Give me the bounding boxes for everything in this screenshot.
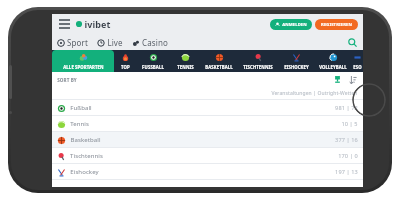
button[interactable]: Search (346, 36, 358, 48)
button[interactable]: TENNIS (170, 50, 200, 72)
staticText: Fußball (70, 104, 92, 112)
button[interactable]: Eishockey (52, 164, 363, 180)
staticText: ALLE SPORTARTEN (63, 64, 104, 70)
staticText: REGISTRIEREN (321, 22, 352, 28)
staticText: Tennis (70, 120, 89, 128)
button[interactable]: Fußball (52, 100, 363, 116)
button[interactable]: Menu (57, 17, 71, 31)
button[interactable]: Home button (352, 83, 386, 117)
staticText: Veranstaltungen | Outright-Wetten (271, 90, 358, 97)
button[interactable]: REGISTRIEREN (315, 19, 358, 30)
button[interactable]: Tennis (52, 116, 363, 132)
staticText: Tischtennis (70, 152, 103, 160)
button[interactable]: TISCHTENNIS (238, 50, 278, 72)
button[interactable]: ivibet (75, 18, 111, 30)
button[interactable]: FUSSBALL (136, 50, 170, 72)
staticText: 981 | 72 (335, 104, 358, 112)
staticText: SORT BY (57, 77, 77, 83)
staticText: 170 | 0 (338, 152, 358, 160)
button[interactable]: Sport (57, 37, 88, 48)
button[interactable]: Casino (132, 37, 168, 48)
staticText: ANMELDEN (282, 22, 307, 28)
button[interactable]: TOP (114, 50, 136, 72)
staticText: BASKETBALL (205, 64, 233, 70)
button[interactable]: Live (97, 37, 123, 48)
staticText: TOP (121, 64, 130, 70)
button[interactable]: VOLLEYBALL (314, 50, 352, 72)
button[interactable]: Tournaments (332, 74, 343, 85)
button[interactable]: EISHOCKEY (278, 50, 314, 72)
staticText: Casino (142, 37, 168, 48)
staticText: VOLLEYBALL (319, 64, 347, 70)
staticText: 10 | 5 (341, 120, 358, 128)
button[interactable]: Basketball (52, 132, 363, 148)
staticText: 377 | 16 (335, 136, 358, 144)
button[interactable]: ANMELDEN (270, 19, 312, 30)
staticText: 197 | 13 (335, 168, 358, 176)
staticText: Basketball (70, 136, 101, 144)
staticText: Sport (67, 37, 88, 48)
button[interactable]: ALLE SPORTARTEN (52, 50, 114, 72)
button[interactable]: Tischtennis (52, 148, 363, 164)
staticText: ESOCC (352, 64, 363, 70)
staticText: ivibet (84, 18, 111, 30)
button[interactable]: BASKETBALL (200, 50, 238, 72)
button[interactable]: Sort order (347, 74, 358, 85)
staticText: TENNIS (177, 64, 194, 70)
staticText: Eishockey (70, 168, 99, 176)
staticText: TISCHTENNIS (243, 64, 273, 70)
staticText: Live (107, 37, 123, 48)
button[interactable]: ESOCC (352, 50, 363, 72)
staticText: FUSSBALL (142, 64, 164, 70)
staticText: EISHOCKEY (284, 64, 309, 70)
